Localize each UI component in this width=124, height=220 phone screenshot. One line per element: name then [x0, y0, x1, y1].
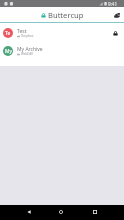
button[interactable]: Locked	[110, 28, 121, 39]
button[interactable]: My	[0, 41, 124, 59]
button[interactable]: Te	[0, 23, 124, 41]
staticText: Dropbox	[21, 34, 34, 38]
staticText: Buttercup	[48, 10, 84, 20]
staticText: 9:41	[108, 1, 118, 7]
staticText: Te	[5, 30, 11, 37]
button[interactable]: Recents	[86, 205, 103, 218]
button[interactable]: Back	[20, 205, 37, 218]
staticText: My Archive	[17, 46, 43, 53]
button[interactable]: Add vault	[111, 10, 122, 21]
staticText: WebDAV	[21, 52, 33, 56]
staticText: My	[5, 48, 12, 55]
staticText: Test	[17, 28, 27, 35]
button[interactable]: Home	[52, 205, 69, 218]
